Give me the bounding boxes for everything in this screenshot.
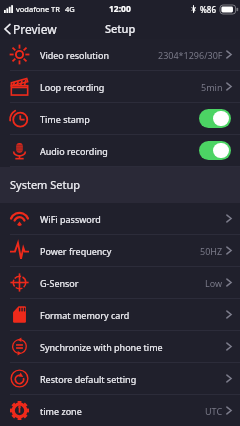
staticText: Preview <box>13 21 57 37</box>
staticText: Audio recording <box>40 145 108 157</box>
staticText: UTC <box>205 405 223 417</box>
staticText: Power frequency <box>40 245 112 257</box>
other: Toggle Time stamp <box>199 109 231 128</box>
button[interactable]: G-Sensor <box>0 267 240 299</box>
button[interactable]: Power frequency <box>0 235 240 267</box>
staticText: Low <box>205 277 223 289</box>
staticText: 2304*1296/30F <box>158 49 223 61</box>
staticText: Loop recording <box>40 81 105 93</box>
button[interactable]: Video resolution <box>0 39 240 71</box>
button[interactable]: Audio recording <box>0 135 240 167</box>
button[interactable]: Restore default setting <box>0 363 240 395</box>
staticText: Format memory card <box>40 309 130 321</box>
other: Toggle Audio recording <box>199 141 231 160</box>
button[interactable]: Format memory card <box>0 299 240 331</box>
staticText: Synchronize with phone time <box>40 341 163 353</box>
button[interactable]: time zone <box>0 395 240 426</box>
staticText: G-Sensor <box>40 277 79 289</box>
staticText: 50HZ <box>200 245 223 257</box>
button[interactable]: WiFi password <box>0 203 240 235</box>
staticText: System Setup <box>10 177 81 192</box>
staticText: Restore default setting <box>40 373 137 385</box>
button[interactable]: Preview <box>0 21 63 37</box>
staticText: 4G <box>65 4 75 14</box>
staticText: 5min <box>201 81 223 93</box>
button[interactable]: Synchronize with phone time <box>0 331 240 363</box>
staticText: Video resolution <box>40 49 109 61</box>
staticText: WiFi password <box>40 213 101 225</box>
button[interactable]: Loop recording <box>0 71 240 103</box>
staticText: %86 <box>200 4 216 15</box>
staticText: time zone <box>40 405 82 417</box>
staticText: 12:00 <box>109 3 131 15</box>
staticText: Setup <box>105 21 136 36</box>
staticText: vodafone TR <box>16 4 60 14</box>
staticText: Time stamp <box>40 113 90 125</box>
button[interactable]: Time stamp <box>0 103 240 135</box>
